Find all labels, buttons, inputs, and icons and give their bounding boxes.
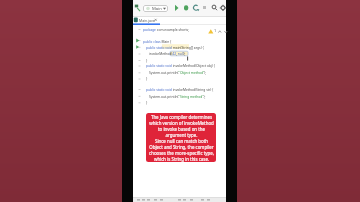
staticText: public static void main(String[] args) { <box>146 45 204 49</box>
staticText: public class Main { <box>143 39 172 43</box>
staticText: public static void invokeMethod(Object o… <box>146 63 215 67</box>
button[interactable]: Main <box>143 5 168 12</box>
staticText: 1 <box>214 28 217 33</box>
staticText: System.out.println("String method"); <box>149 94 206 98</box>
staticText: System.out.println("Object method"); <box>149 70 207 74</box>
staticText: The Java compiler determines which versi… <box>149 114 214 162</box>
staticText: Main.java <box>139 18 155 23</box>
button[interactable] <box>133 0 226 17</box>
staticText: } <box>146 100 148 104</box>
button[interactable]: Main.java <box>133 17 226 25</box>
staticText: } <box>146 58 148 62</box>
staticText: } <box>146 76 148 80</box>
button[interactable]: The Java compiler determines which versi… <box>146 113 216 162</box>
staticText: invokeMethod(42, null); <box>149 51 186 55</box>
staticText: package com.example.shorts; <box>143 27 190 31</box>
staticText: Main <box>152 6 162 12</box>
staticText: public static void invokeMethod(String s… <box>146 87 214 91</box>
